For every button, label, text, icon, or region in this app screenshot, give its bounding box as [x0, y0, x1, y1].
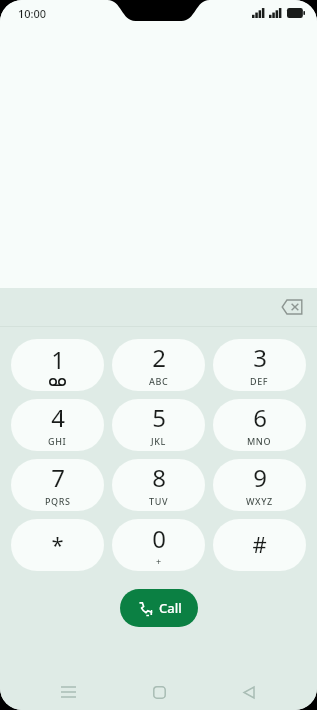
button[interactable]: 6: [213, 399, 306, 451]
button[interactable]: Back: [227, 674, 271, 710]
staticText: 2: [152, 341, 166, 374]
staticText: JKL: [151, 435, 166, 447]
staticText: 8: [152, 461, 166, 494]
staticText: 9: [253, 461, 267, 494]
staticText: MNO: [247, 435, 272, 447]
staticText: 5: [152, 401, 166, 434]
staticText: 6: [253, 401, 267, 434]
button[interactable]: 0: [112, 519, 205, 571]
button[interactable]: Backspace: [275, 290, 309, 324]
staticText: WXYZ: [246, 495, 273, 507]
button[interactable]: 9: [213, 459, 306, 511]
staticText: TUV: [149, 495, 169, 507]
staticText: +: [156, 555, 162, 567]
button[interactable]: 4: [11, 399, 104, 451]
button[interactable]: *: [11, 519, 104, 571]
staticText: 1: [51, 343, 65, 376]
staticText: GHI: [48, 435, 67, 447]
button[interactable]: 3: [213, 339, 306, 391]
button[interactable]: 8: [112, 459, 205, 511]
button[interactable]: 5: [112, 399, 205, 451]
button[interactable]: Call: [120, 589, 198, 627]
button[interactable]: Recent apps: [46, 674, 90, 710]
button[interactable]: Home: [137, 674, 181, 710]
staticText: 4: [51, 401, 65, 434]
staticText: DEF: [250, 375, 269, 387]
staticText: 3: [253, 341, 267, 374]
staticText: PQRS: [45, 495, 71, 507]
button[interactable]: 2: [112, 339, 205, 391]
staticText: Call: [159, 599, 182, 617]
staticText: #: [252, 529, 267, 559]
staticText: 10:00: [18, 6, 47, 21]
staticText: *: [51, 529, 64, 559]
staticText: 7: [51, 461, 65, 494]
staticText: 0: [152, 522, 166, 555]
button[interactable]: 1: [11, 339, 104, 391]
button[interactable]: #: [213, 519, 306, 571]
staticText: ABC: [149, 375, 169, 387]
button[interactable]: 7: [11, 459, 104, 511]
